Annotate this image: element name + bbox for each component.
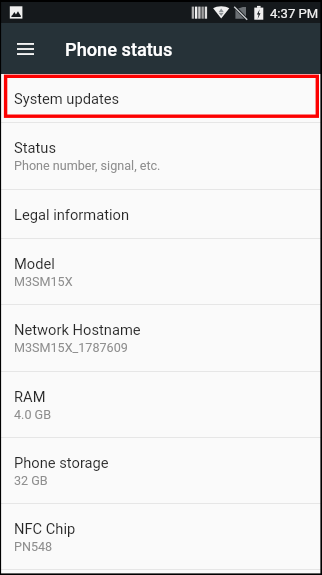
staticText: Model — [14, 255, 55, 272]
staticText: Status — [14, 139, 56, 156]
staticText: 4.0 GB — [14, 407, 52, 422]
button[interactable]: Open navigation menu — [0, 23, 50, 74]
button[interactable]: Network Hostname — [0, 305, 322, 372]
staticText: Legal information — [14, 206, 130, 223]
staticText: Phone status — [65, 39, 173, 60]
button[interactable]: System updates — [0, 74, 322, 122]
staticText: M3SM15X — [14, 274, 73, 289]
staticText: Network Hostname — [14, 321, 141, 338]
button[interactable]: Status — [0, 123, 322, 190]
staticText: RAM — [14, 388, 46, 405]
button[interactable]: Legal information — [0, 190, 322, 239]
staticText: Phone number, signal, etc. — [14, 158, 161, 173]
staticText: 4:37 PM — [270, 6, 319, 21]
staticText: M3SM15X_1787609 — [14, 340, 128, 355]
staticText: NFC Chip — [14, 520, 76, 537]
button[interactable]: NFC Chip — [0, 504, 322, 570]
button[interactable]: Model — [0, 239, 322, 305]
button[interactable]: RAM — [0, 372, 322, 438]
staticText: System updates — [14, 90, 120, 107]
staticText: Phone storage — [14, 454, 109, 471]
staticText: PN548 — [14, 539, 53, 554]
staticText: 32 GB — [14, 473, 48, 488]
button[interactable]: Phone storage — [0, 438, 322, 504]
